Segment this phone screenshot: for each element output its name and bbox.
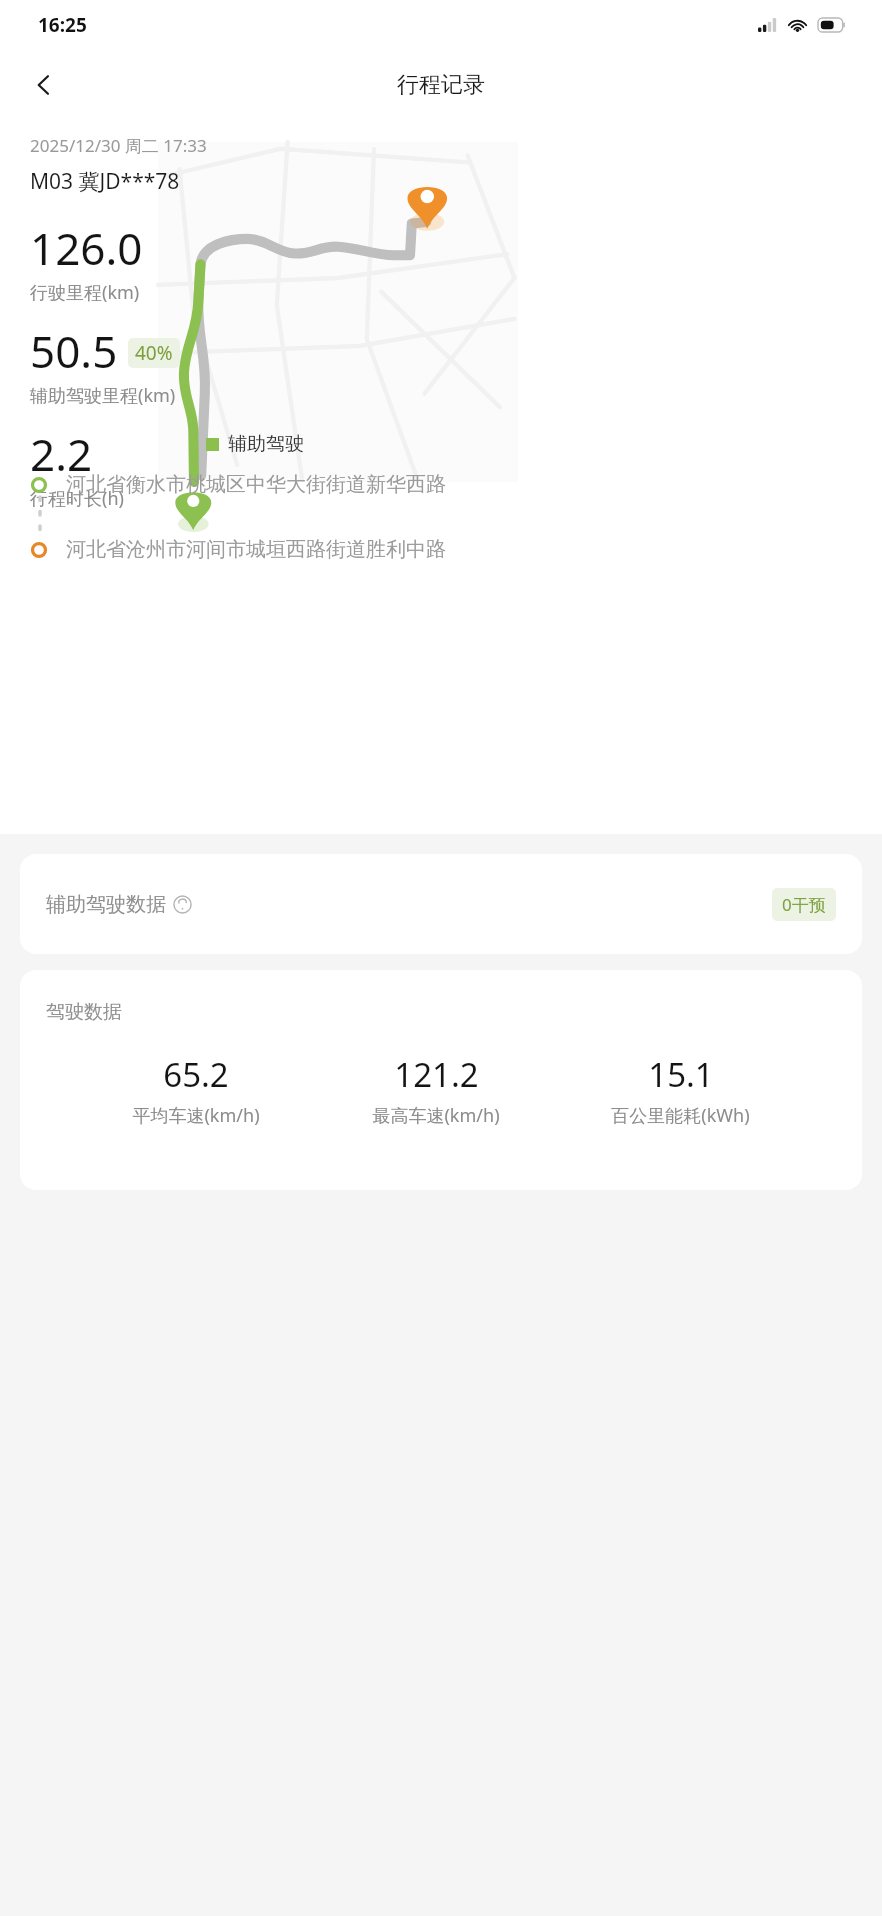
button[interactable]: Back — [20, 61, 68, 109]
staticText: 辅助驾驶里程(km) — [30, 383, 176, 408]
button[interactable]: 辅助驾驶数据 — [20, 854, 862, 954]
staticText: 行程时长(h) — [30, 486, 124, 511]
staticText: 15.1 — [648, 1052, 714, 1097]
staticText: 2025/12/30 周二 17:33 — [30, 134, 207, 157]
staticText: 40% — [135, 340, 173, 366]
staticText: 辅助驾驶 — [228, 432, 304, 456]
staticText: 2.2 — [30, 424, 93, 484]
staticText: M03 冀JD***78 — [30, 167, 180, 196]
button[interactable]: 驾驶数据 — [20, 970, 862, 1190]
staticText: 驾驶数据 — [46, 1000, 122, 1024]
staticText: 0干预 — [782, 893, 826, 916]
staticText: 百公里能耗(kWh) — [611, 1103, 750, 1128]
staticText: 121.2 — [394, 1052, 479, 1097]
staticText: 河北省沧州市河间市城垣西路街道胜利中路 — [66, 537, 446, 562]
staticText: 65.2 — [163, 1052, 229, 1097]
staticText: 行驶里程(km) — [30, 280, 140, 305]
staticText: 行程记录 — [397, 71, 485, 99]
staticText: 最高车速(km/h) — [372, 1103, 500, 1128]
staticText: 126.0 — [30, 218, 143, 278]
staticText: 平均车速(km/h) — [132, 1103, 260, 1128]
staticText: 辅助驾驶数据 — [46, 892, 166, 917]
staticText: 16:25 — [38, 12, 87, 38]
staticText: 河北省衡水市桃城区中华大街街道新华西路 — [66, 472, 446, 497]
staticText: 50.5 — [30, 321, 118, 381]
